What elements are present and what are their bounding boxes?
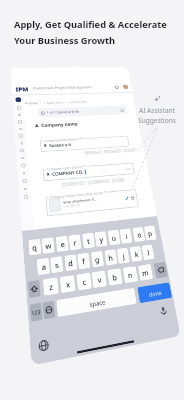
button[interactable]: Menu item	[19, 141, 24, 145]
staticText: Sussex s.n	[108, 149, 121, 153]
other: Notifications	[114, 85, 119, 89]
button[interactable]: m	[138, 264, 153, 281]
staticText: IPM	[15, 85, 29, 93]
button[interactable]: Sussex s.n	[85, 150, 101, 155]
button[interactable]: Backspace	[153, 262, 168, 278]
button[interactable]: w	[41, 237, 55, 254]
button[interactable]: h	[104, 249, 118, 266]
button[interactable]	[40, 136, 130, 152]
button[interactable]: Profile	[15, 97, 21, 102]
button[interactable]: l	[141, 244, 155, 260]
button[interactable]: Dictate	[159, 306, 168, 316]
staticText: Company name reservation attach	[49, 190, 104, 199]
staticText: Your Business Growth	[14, 34, 116, 47]
button[interactable]: z	[43, 277, 59, 296]
button[interactable]: 123	[29, 302, 43, 322]
staticText: q	[32, 242, 38, 253]
button[interactable]: Menu item	[18, 127, 23, 131]
button[interactable]: d	[64, 254, 78, 271]
staticText: v	[97, 274, 103, 285]
button[interactable]: Menu item	[21, 163, 26, 168]
button[interactable]: Menu item	[19, 134, 23, 138]
staticText: COMP	[116, 178, 124, 182]
staticText: Sussex	[128, 148, 136, 152]
button[interactable]: Menu item	[22, 179, 27, 183]
button[interactable]: Help	[120, 109, 124, 112]
button[interactable]: Edit	[125, 196, 129, 200]
button[interactable]: Menu item	[21, 156, 25, 160]
staticText: 1-4-1 General Info	[46, 109, 80, 116]
staticText: h	[108, 253, 114, 263]
button[interactable]: 1-4-1 General Info	[37, 105, 127, 118]
button[interactable]: q	[28, 239, 42, 256]
button[interactable]: COMPANY CO	[88, 179, 109, 184]
button[interactable]: Language	[38, 339, 49, 352]
staticText: temp_attachment_9...	[62, 196, 97, 204]
button[interactable]: Menu item	[22, 171, 26, 175]
staticText: l	[147, 248, 150, 258]
staticText: p	[147, 229, 154, 238]
button[interactable]: Sussex s.n	[105, 149, 121, 154]
button[interactable]: Menu item	[20, 149, 24, 152]
button[interactable]: Menu item	[24, 195, 28, 199]
button[interactable]: y	[94, 231, 108, 247]
staticText: AI Assistant	[133, 106, 181, 115]
button[interactable]: n	[122, 266, 138, 283]
staticText: j	[122, 251, 126, 261]
button[interactable]: Delete	[130, 196, 135, 200]
staticText: x	[65, 279, 71, 290]
button[interactable]: u	[107, 229, 121, 245]
staticText: Investment Project Management	[32, 85, 92, 91]
button[interactable]: r	[68, 234, 82, 250]
staticText: space	[89, 297, 107, 308]
button[interactable]: p	[144, 225, 157, 241]
staticText: Home	[28, 101, 38, 105]
staticText: y	[99, 234, 104, 244]
button[interactable]: s	[50, 256, 63, 273]
button[interactable]: COMP	[112, 178, 124, 182]
staticText: General Info	[69, 99, 87, 104]
button[interactable]: f	[77, 252, 91, 269]
button[interactable]: b	[107, 268, 123, 286]
button[interactable]: o	[132, 227, 145, 242]
button[interactable]: j	[116, 247, 130, 264]
button[interactable]: COMPANY CO.	[62, 181, 85, 187]
staticText: i	[125, 232, 128, 241]
button[interactable]: Sussex	[124, 148, 136, 152]
staticText: >	[40, 101, 42, 105]
button[interactable]	[42, 162, 135, 181]
staticText: w	[45, 241, 52, 251]
staticText: c	[82, 276, 88, 287]
staticText: s	[55, 260, 60, 270]
button[interactable]: g	[91, 251, 104, 267]
button[interactable]: Menu item	[23, 187, 28, 191]
button[interactable]: Menu item	[17, 113, 22, 117]
button[interactable]: Menu item	[17, 106, 21, 110]
staticText: COMPANY CO.	[66, 181, 85, 186]
staticText: Apply, Get Qualified & Accelerate	[14, 18, 167, 31]
button[interactable]: c	[76, 272, 92, 291]
button[interactable]: Shift	[28, 280, 41, 298]
button[interactable]: Emoji	[42, 300, 56, 320]
staticText: u	[111, 233, 117, 243]
button[interactable]: Menu item	[18, 120, 22, 124]
button[interactable]	[45, 189, 139, 217]
button[interactable]: space	[56, 288, 137, 317]
button[interactable]: t	[82, 232, 95, 249]
button[interactable]: done	[137, 282, 172, 303]
staticText: z	[49, 281, 54, 293]
staticText: Company name (Latin)*	[46, 164, 83, 171]
button[interactable]: x	[60, 275, 76, 293]
staticText: >	[65, 101, 67, 104]
button[interactable]: i	[119, 228, 133, 244]
button[interactable]: k	[129, 246, 143, 262]
staticText: t	[86, 236, 91, 246]
staticText: a	[41, 261, 47, 272]
button[interactable]: e	[55, 235, 69, 252]
button[interactable]: v	[91, 270, 107, 288]
staticText: d	[68, 258, 74, 269]
staticText: Company name	[41, 121, 79, 129]
button[interactable]: a	[36, 258, 50, 275]
staticText: COMPANY CO.	[52, 169, 84, 177]
staticText: b	[112, 272, 118, 283]
